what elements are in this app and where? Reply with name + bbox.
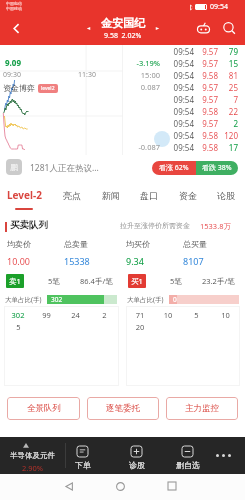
staticText: 10 (211, 310, 240, 320)
staticText: 24 (61, 310, 90, 320)
staticText: 11:30 (78, 70, 96, 80)
staticText (112, 130, 160, 140)
button[interactable]: 主力监控 (166, 397, 238, 420)
button[interactable]: AI assistant (190, 15, 216, 41)
button[interactable]: Home (103, 474, 137, 500)
staticText: 5笔 (48, 276, 60, 286)
staticText: 09:54 (164, 106, 194, 117)
staticText: 09:54 (164, 130, 194, 141)
staticText: 09:54 (210, 2, 228, 12)
staticText: 诊股 (115, 460, 159, 470)
staticText: 9.57 (196, 94, 218, 105)
staticText: 09:54 (164, 94, 194, 105)
staticText: 09:54 (164, 142, 194, 153)
button[interactable]: 论股 (217, 184, 235, 206)
staticText: 5 (4, 322, 33, 332)
staticText: 论股 (217, 190, 235, 201)
button[interactable]: 逐笔委托 (87, 397, 159, 420)
staticText: 看涨 62% (159, 163, 189, 173)
staticText: 15:00 (112, 70, 160, 80)
staticText: 302 (51, 295, 63, 304)
staticText: 99 (32, 310, 61, 320)
staticText: 9.09 (5, 57, 21, 68)
button[interactable]: Recent apps (155, 474, 189, 500)
staticText: 主力监控 (185, 403, 219, 414)
staticText: 2.90% (0, 463, 65, 473)
staticText: 10 (154, 310, 182, 320)
staticText: 9.58 (196, 106, 218, 117)
staticText: 逐笔委托 (106, 403, 140, 414)
staticText: 15 (214, 58, 238, 69)
staticText: 7 (214, 94, 238, 105)
staticText: 8107 (183, 255, 204, 267)
staticText: 5笔 (170, 276, 182, 286)
staticText: 1281人正在热议... (30, 162, 99, 174)
staticText: 大单占比(手) (127, 295, 164, 304)
staticText: 资金博弈 (3, 83, 35, 93)
staticText: 2 (214, 118, 238, 129)
staticText: 均卖价 (7, 239, 31, 249)
button[interactable]: 亮点 (63, 184, 81, 206)
staticText: 均买价 (126, 239, 150, 249)
staticText: 9.57 (196, 46, 218, 57)
button[interactable]: 盘口 (140, 184, 158, 206)
staticText: 下单 (61, 460, 105, 470)
button[interactable]: 新闻 (102, 184, 120, 206)
staticText: 9.57 (196, 118, 218, 129)
button[interactable]: More options (202, 437, 245, 474)
button[interactable]: Back (2, 14, 30, 42)
staticText: 总买量 (183, 239, 207, 249)
staticText: 9.58 (196, 142, 218, 153)
button[interactable]: 删自选 (166, 437, 210, 474)
button[interactable]: 诊股 (115, 437, 159, 474)
staticText: 盘口 (140, 190, 158, 201)
staticText: 302 (4, 310, 32, 320)
staticText: 09:30 (3, 70, 21, 80)
staticText: 9.57 (196, 82, 218, 93)
staticText: 亮点 (63, 190, 81, 201)
staticText: 买1 (131, 276, 143, 286)
staticText: level2 (41, 85, 55, 92)
staticText: 半导体及元件 (0, 451, 65, 460)
staticText: 25 (214, 82, 238, 93)
staticText: 鹏 (10, 162, 18, 172)
staticText: 120 (214, 130, 238, 141)
staticText: 新闻 (102, 190, 120, 201)
staticText: 拉升至涨停价所需资金 (120, 221, 190, 230)
button[interactable]: 全景队列 (7, 397, 80, 420)
staticText: 9.58 2.02% (104, 31, 142, 41)
staticText: 22 (214, 106, 238, 117)
staticText: 大单占比(手) (5, 295, 42, 304)
button[interactable]: Back (52, 474, 86, 500)
staticText: 15338 (64, 255, 90, 267)
staticText: 总卖量 (64, 239, 88, 249)
staticText: 10.00 (7, 255, 31, 267)
staticText: 09:54 (164, 46, 194, 57)
staticText: 09:54 (164, 70, 194, 81)
staticText: 81 (214, 70, 238, 81)
staticText: -3.19% (112, 58, 160, 68)
button[interactable]: 资金 (179, 184, 197, 206)
button[interactable]: 半导体及元件 (0, 437, 65, 474)
staticText: 71 (126, 310, 154, 320)
button[interactable]: 鹏 (6, 159, 22, 175)
staticText: 9.57 (196, 58, 218, 69)
staticText: 0 (173, 295, 177, 304)
staticText: 删自选 (166, 460, 210, 470)
staticText: -0.087 (112, 142, 160, 152)
button[interactable]: 下单 (61, 437, 105, 474)
staticText: 看跌 38% (202, 163, 232, 173)
button[interactable]: Search (216, 15, 242, 41)
staticText: 中国移动 (6, 6, 22, 11)
staticText: 9.58 (196, 70, 218, 81)
staticText: 全景队列 (27, 403, 61, 414)
staticText: 09:54 (164, 58, 194, 69)
button[interactable]: Level-2 (7, 184, 42, 206)
button[interactable]: 看涨 62% (152, 161, 238, 175)
staticText: 2 (90, 310, 119, 320)
staticText: 中国电信 (6, 1, 22, 6)
staticText: 23.2手/笔 (202, 276, 235, 286)
